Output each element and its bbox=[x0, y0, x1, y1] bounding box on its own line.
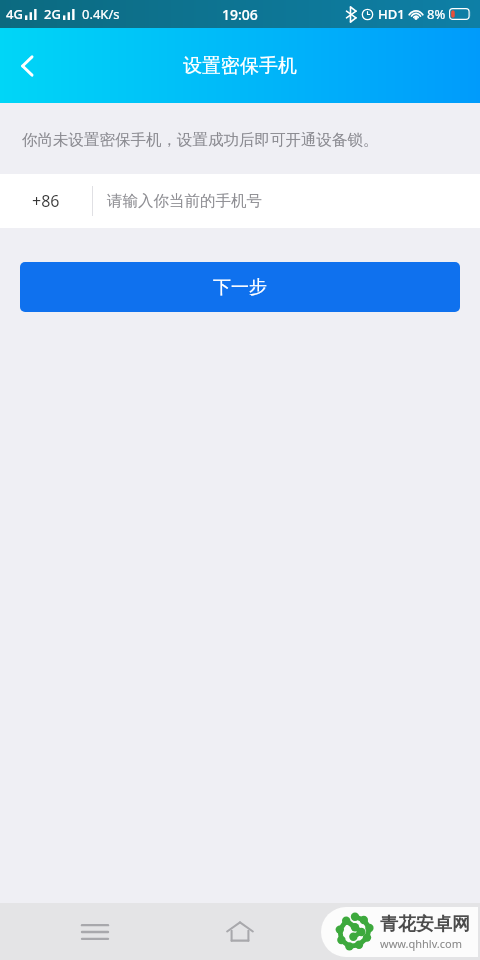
staticText: 4G bbox=[6, 5, 23, 23]
staticText: www.qhhlv.com bbox=[380, 936, 462, 951]
staticText: 下一步 bbox=[213, 276, 267, 299]
button[interactable]: 下一步 bbox=[20, 262, 460, 312]
staticText: 19:06 bbox=[222, 5, 258, 24]
staticText: 青花安卓网 bbox=[380, 913, 470, 936]
staticText: 请输入你当前的手机号 bbox=[107, 191, 262, 211]
button[interactable]: Home bbox=[208, 903, 272, 960]
staticText: 0.4K/s bbox=[82, 5, 120, 23]
staticText: HD1 bbox=[378, 5, 405, 23]
staticText: 2G bbox=[44, 5, 61, 23]
staticText: +86 bbox=[32, 190, 60, 212]
button[interactable]: Menu bbox=[63, 903, 127, 960]
button[interactable]: +86 bbox=[0, 174, 480, 228]
staticText: 设置密保手机 bbox=[183, 54, 297, 78]
staticText: 你尚未设置密保手机，设置成功后即可开通设备锁。 bbox=[22, 130, 379, 150]
button[interactable]: Back bbox=[0, 39, 54, 93]
staticText: 8% bbox=[427, 5, 446, 23]
